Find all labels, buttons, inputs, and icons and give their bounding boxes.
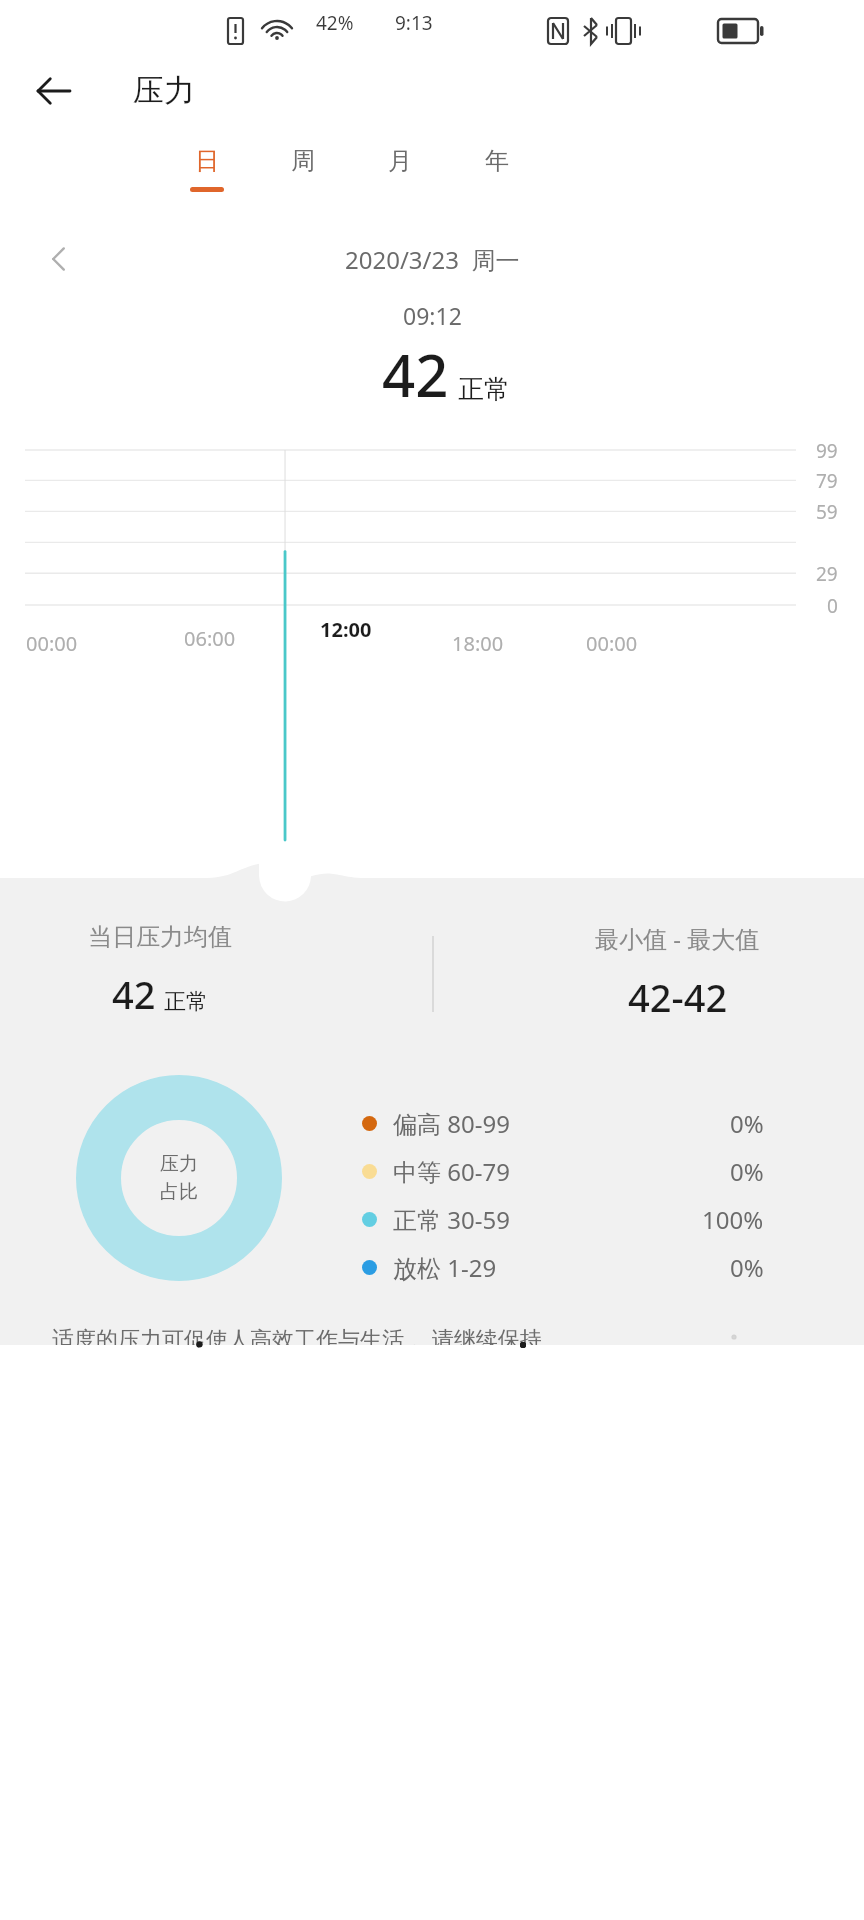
button[interactable]: Back	[22, 60, 84, 122]
staticText: 00:00	[586, 630, 638, 657]
staticText: 09:12	[403, 300, 462, 331]
staticText: 0%	[730, 1107, 764, 1140]
staticText: 压力	[133, 71, 195, 110]
staticText: 周	[291, 146, 315, 176]
button[interactable]: 正常 30-59	[362, 1195, 792, 1243]
staticText: 正常	[164, 988, 208, 1016]
staticText: 29	[816, 561, 838, 587]
staticText: 18:00	[452, 630, 504, 657]
button[interactable]: 中等 60-79	[362, 1147, 792, 1195]
staticText: 适度的压力可促使人高效工作与生活 。请继续保持 对压力的有效调节 。	[52, 1323, 542, 1345]
staticText: 2020/3/23 周一	[345, 243, 520, 276]
staticText: 0	[827, 593, 838, 619]
button[interactable]: 日	[172, 146, 242, 218]
staticText: 当日压力均值	[88, 922, 232, 952]
staticText: 06:00	[184, 625, 236, 652]
staticText: 42%	[316, 10, 354, 36]
staticText: 日	[195, 146, 219, 176]
button[interactable]: 偏高 80-99	[362, 1099, 792, 1147]
staticText: 中等 60-79	[393, 1155, 510, 1188]
staticText: 00:00	[26, 630, 78, 657]
staticText: 正常	[458, 373, 510, 406]
staticText: 最小值 - 最大值	[595, 922, 760, 955]
staticText: 79	[816, 468, 838, 494]
staticText: 占比	[160, 1180, 198, 1204]
staticText: 月	[388, 146, 412, 176]
staticText: 12:00	[320, 616, 372, 643]
staticText: 偏高 80-99	[393, 1107, 510, 1140]
button[interactable]: 月	[365, 146, 435, 218]
staticText: 压力	[160, 1152, 198, 1176]
staticText: 59	[816, 499, 838, 525]
staticText: 42-42	[628, 971, 728, 1023]
staticText: 正常 30-59	[393, 1203, 510, 1236]
staticText: 放松 1-29	[393, 1251, 497, 1284]
button[interactable]: 放松 1-29	[362, 1243, 792, 1291]
button[interactable]: 年	[462, 146, 532, 218]
staticText: 9:13	[395, 10, 433, 36]
staticText: 42	[382, 335, 449, 414]
button[interactable]: 周	[268, 146, 338, 218]
staticText: 42	[112, 968, 156, 1020]
staticText: 100%	[702, 1203, 764, 1236]
staticText: 0%	[730, 1155, 764, 1188]
staticText: 99	[816, 438, 838, 464]
button[interactable]: Previous day	[32, 234, 86, 284]
staticText: 0%	[730, 1251, 764, 1284]
staticText: 年	[485, 146, 509, 176]
